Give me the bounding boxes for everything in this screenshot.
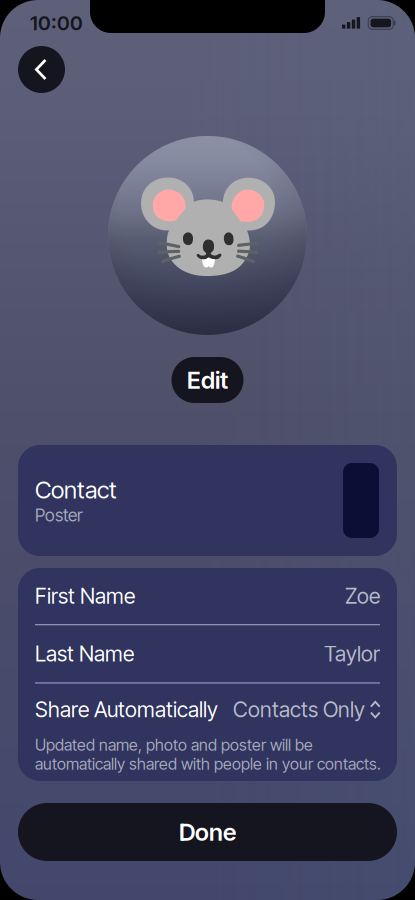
staticText: Last Name [35, 641, 134, 666]
staticText: Contact [35, 476, 117, 504]
button[interactable]: Done [18, 803, 397, 861]
staticText: Contacts Only [233, 697, 365, 722]
button[interactable]: Back [18, 46, 65, 93]
button[interactable]: Edit [171, 357, 243, 403]
button[interactable]: First Name [18, 568, 397, 624]
button[interactable]: Contact [18, 445, 397, 556]
staticText: First Name [35, 583, 135, 609]
staticText: 🐭 [130, 154, 284, 295]
staticText: 10:00 [30, 11, 83, 35]
staticText: Share Automatically [35, 697, 218, 722]
staticText: Done [179, 818, 236, 846]
staticText: Taylor [324, 641, 380, 666]
staticText: Updated name, photo and poster will be a… [35, 736, 381, 773]
staticText: Edit [187, 366, 228, 394]
staticText: Zoe [345, 583, 380, 609]
button[interactable]: Last Name [18, 625, 397, 682]
button[interactable]: Share Automatically [18, 684, 397, 736]
staticText: Poster [35, 505, 83, 525]
